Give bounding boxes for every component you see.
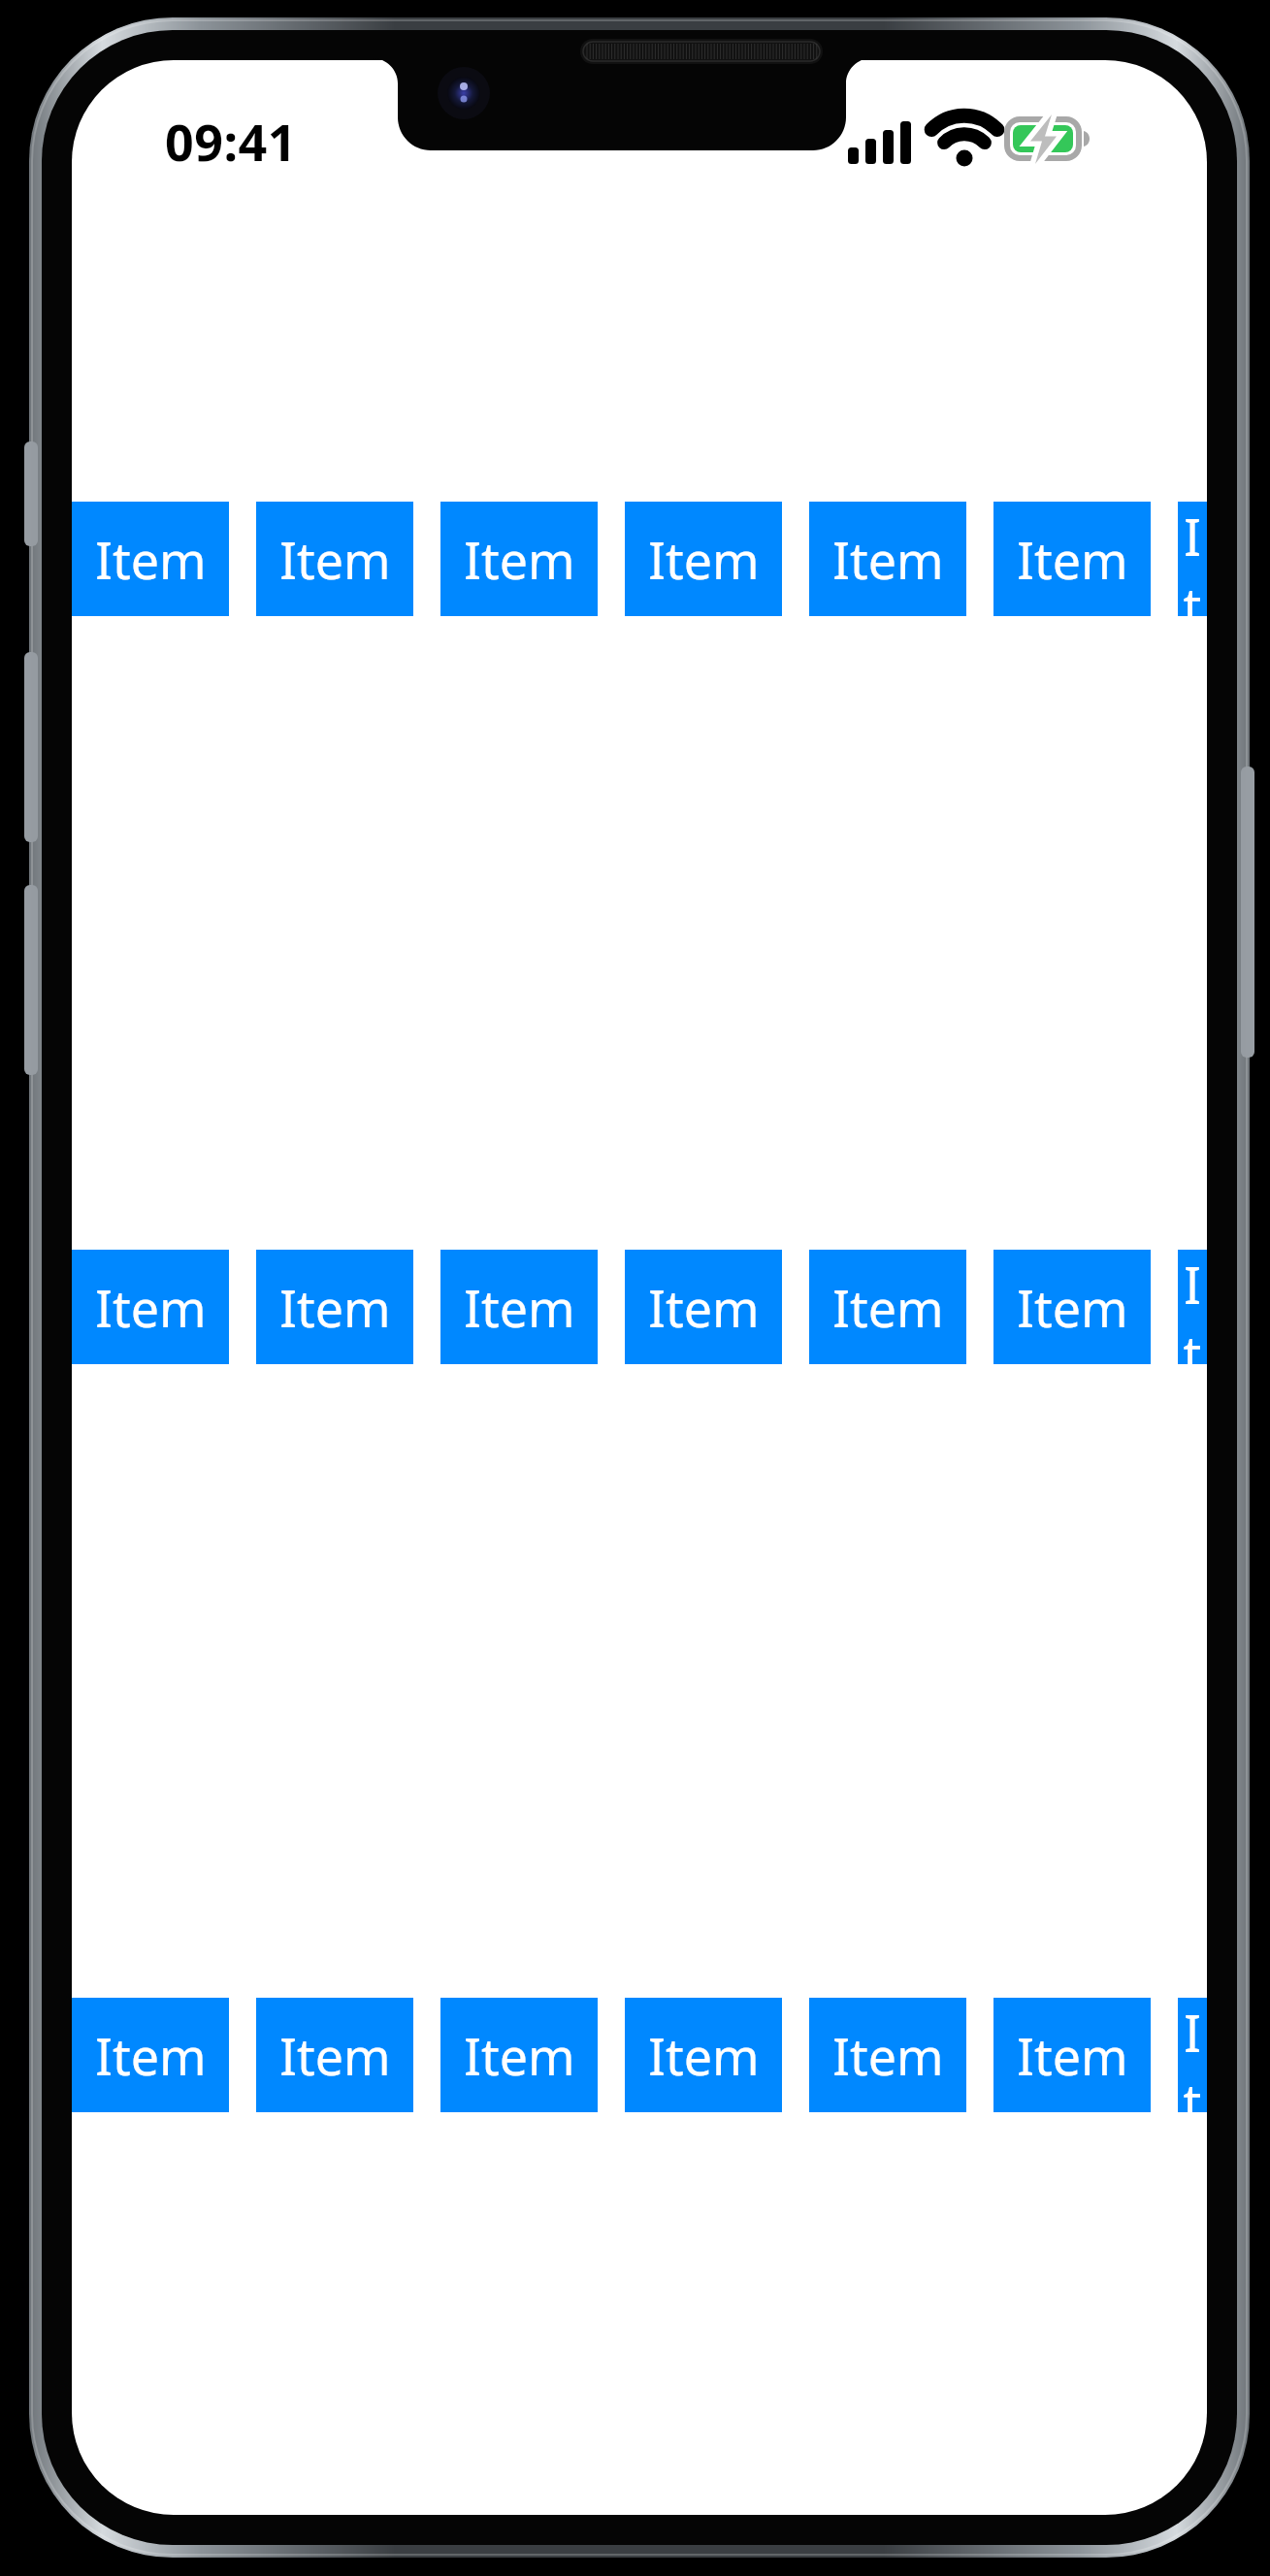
staticText: Item [1178, 1250, 1207, 1364]
button[interactable]: Item [440, 1998, 598, 2112]
staticText: Item [648, 525, 760, 594]
staticText: Item [1178, 502, 1207, 616]
staticText: Item [95, 1273, 207, 1342]
staticText: Item [648, 1273, 760, 1342]
button[interactable]: Item [72, 1250, 229, 1364]
button[interactable]: Item [1178, 1998, 1207, 2112]
button[interactable]: Item [256, 1998, 413, 2112]
other: Signal, Wi-Fi and battery status [848, 109, 1168, 177]
staticText: Item [1017, 2021, 1128, 2090]
button[interactable]: Item [625, 1998, 782, 2112]
button[interactable]: Item [256, 1250, 413, 1364]
staticText: Item [1017, 525, 1128, 594]
button[interactable]: Item [72, 502, 229, 616]
staticText: Item [279, 2021, 391, 2090]
button[interactable]: Item [1178, 502, 1207, 616]
staticText: Item [279, 1273, 391, 1342]
button[interactable]: Item [809, 1250, 966, 1364]
staticText: Item [832, 525, 944, 594]
button[interactable]: Item [1178, 1250, 1207, 1364]
staticText: Item [95, 525, 207, 594]
button[interactable]: Item [440, 502, 598, 616]
staticText: Item [1178, 1998, 1207, 2112]
button[interactable]: Item [72, 1998, 229, 2112]
button[interactable]: Item [625, 1250, 782, 1364]
staticText: Item [279, 525, 391, 594]
button[interactable]: Item [625, 502, 782, 616]
button[interactable]: Item [256, 502, 413, 616]
button[interactable]: Item [993, 1250, 1151, 1364]
staticText: Item [464, 525, 575, 594]
button[interactable]: Item [809, 1998, 966, 2112]
staticText: Item [464, 2021, 575, 2090]
staticText: Item [648, 2021, 760, 2090]
staticText: 09:41 [165, 107, 298, 175]
staticText: Item [832, 2021, 944, 2090]
staticText: Item [95, 2021, 207, 2090]
button[interactable]: Item [993, 1998, 1151, 2112]
button[interactable]: Item [993, 502, 1151, 616]
button[interactable]: Item [809, 502, 966, 616]
staticText: Item [832, 1273, 944, 1342]
staticText: Item [464, 1273, 575, 1342]
staticText: Item [1017, 1273, 1128, 1342]
button[interactable]: Item [440, 1250, 598, 1364]
